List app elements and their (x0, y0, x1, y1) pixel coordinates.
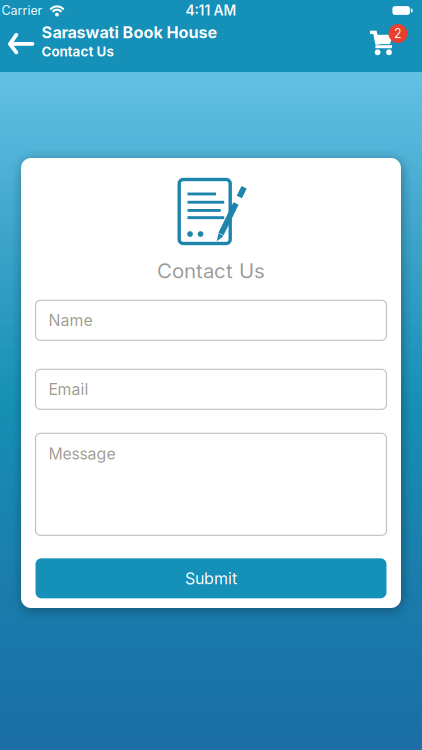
staticText: Email (48, 380, 88, 399)
button[interactable]: Submit (35, 558, 386, 598)
staticText: Saraswati Book House (41, 22, 217, 42)
staticText: 2 (394, 26, 402, 41)
textField[interactable]: Message (48, 444, 386, 463)
staticText: Message (48, 444, 115, 463)
textField[interactable]: Name (48, 311, 386, 330)
staticText: Contact Us (157, 258, 265, 283)
staticText: Name (48, 311, 92, 330)
staticText: 4:11 AM (185, 2, 236, 19)
textField[interactable]: Email (48, 380, 386, 399)
staticText: Contact Us (41, 44, 114, 60)
button[interactable]: Back (0, 22, 42, 66)
staticText: Submit (185, 569, 237, 588)
staticText: Carrier (1, 3, 42, 18)
button[interactable]: Cart (366, 22, 410, 66)
